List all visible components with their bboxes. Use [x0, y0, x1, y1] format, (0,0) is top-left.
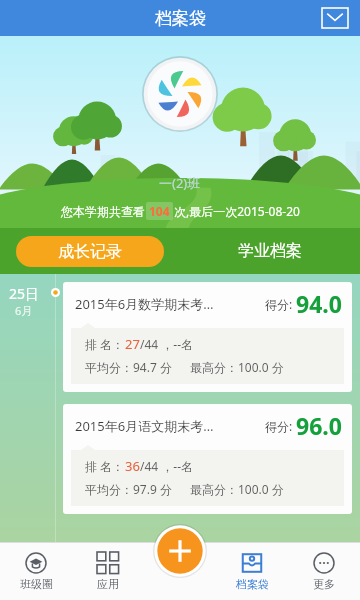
staticText: 最高分：100.0 分 — [190, 481, 284, 497]
button[interactable]: 更多 — [288, 542, 360, 600]
staticText: 更多 — [313, 577, 335, 591]
button[interactable]: 学业档案 — [180, 228, 360, 274]
button[interactable]: 档案袋 — [216, 542, 288, 600]
staticText: 班级圈 — [20, 577, 53, 591]
staticText: 平均分：97.9 分 — [85, 481, 172, 497]
staticText: 2015年6月数学期末考… — [75, 295, 214, 313]
staticText: 平均分：94.7 分 — [85, 359, 172, 375]
staticText: 36 — [125, 457, 140, 475]
staticText: 档案袋 — [155, 8, 206, 29]
staticText: 档案袋 — [236, 577, 269, 591]
staticText: 学业档案 — [238, 241, 302, 261]
staticText: 2015年6月语文期末考… — [75, 417, 214, 435]
button[interactable]: Profile avatar — [142, 56, 218, 132]
button[interactable]: 成长记录 — [0, 228, 180, 274]
staticText: /44 ，--名 — [140, 458, 194, 474]
button[interactable]: 2015年6月语文期末考… — [63, 404, 352, 514]
staticText: 27 — [125, 335, 140, 353]
staticText: 一(2)班 — [159, 174, 201, 192]
staticText: 得分: — [265, 296, 293, 312]
staticText: 排 名： — [85, 336, 125, 352]
staticText: 成长记录 — [58, 242, 122, 262]
button[interactable]: 2015年6月数学期末考… — [63, 282, 352, 392]
button[interactable]: Add — [153, 524, 207, 578]
staticText: 应用 — [97, 577, 119, 591]
staticText: 6月 — [15, 303, 33, 318]
staticText: 排 名： — [85, 458, 125, 474]
staticText: 次,最后一次2015-08-20 — [174, 203, 300, 219]
staticText: 得分: — [265, 418, 293, 434]
staticText: 最高分：100.0 分 — [190, 359, 284, 375]
button[interactable]: 应用 — [72, 542, 144, 600]
button[interactable]: Messages — [320, 5, 350, 31]
staticText: 您本学期共查看 — [61, 204, 145, 219]
button[interactable]: 班级圈 — [0, 542, 72, 600]
staticText: /44 ，--名 — [140, 336, 194, 352]
staticText: 94.0 — [296, 288, 342, 319]
staticText: 96.0 — [296, 410, 342, 441]
staticText: 104 — [149, 203, 170, 219]
staticText: 25日 — [9, 284, 40, 303]
